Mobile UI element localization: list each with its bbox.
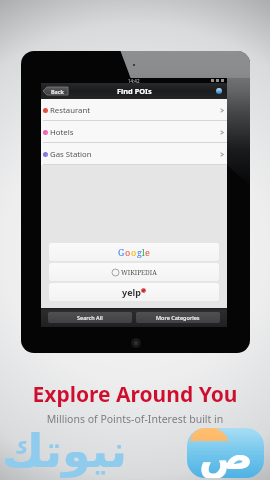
staticText: 14:42 — [128, 78, 140, 83]
button[interactable]: yelp — [49, 283, 219, 301]
button[interactable]: Back — [43, 87, 68, 95]
staticText: Gas Station — [50, 149, 92, 160]
staticText: WIKIPEDIA — [121, 268, 157, 277]
staticText: yelp — [122, 286, 141, 298]
button[interactable]: Hotels — [41, 121, 227, 143]
button[interactable]: More Categories — [136, 312, 220, 323]
button[interactable]: G — [49, 243, 219, 261]
button[interactable]: Restaurant — [41, 99, 227, 121]
button[interactable]: Gas Station — [41, 143, 227, 165]
staticText: Search All — [77, 314, 103, 321]
staticText: More Categories — [156, 314, 200, 321]
button[interactable]: Info — [216, 88, 222, 94]
staticText: e — [145, 246, 150, 258]
staticText: g — [137, 246, 142, 258]
staticText: Hotels — [50, 127, 74, 138]
staticText: o — [131, 246, 137, 258]
staticText: Find POIs — [117, 86, 152, 96]
staticText: l — [142, 246, 145, 258]
staticText: Explore Around You — [0, 380, 270, 409]
staticText: Restaurant — [50, 105, 91, 116]
staticText: ص — [199, 432, 253, 478]
button[interactable]: WIKIPEDIA — [49, 263, 219, 281]
staticText: G — [118, 246, 125, 258]
staticText: Millions of Points-of-Interest built in — [0, 412, 270, 426]
staticText: نيوتك — [2, 424, 127, 478]
staticText: o — [125, 246, 131, 258]
button[interactable]: Search All — [48, 312, 132, 323]
staticText: Back — [51, 88, 64, 95]
